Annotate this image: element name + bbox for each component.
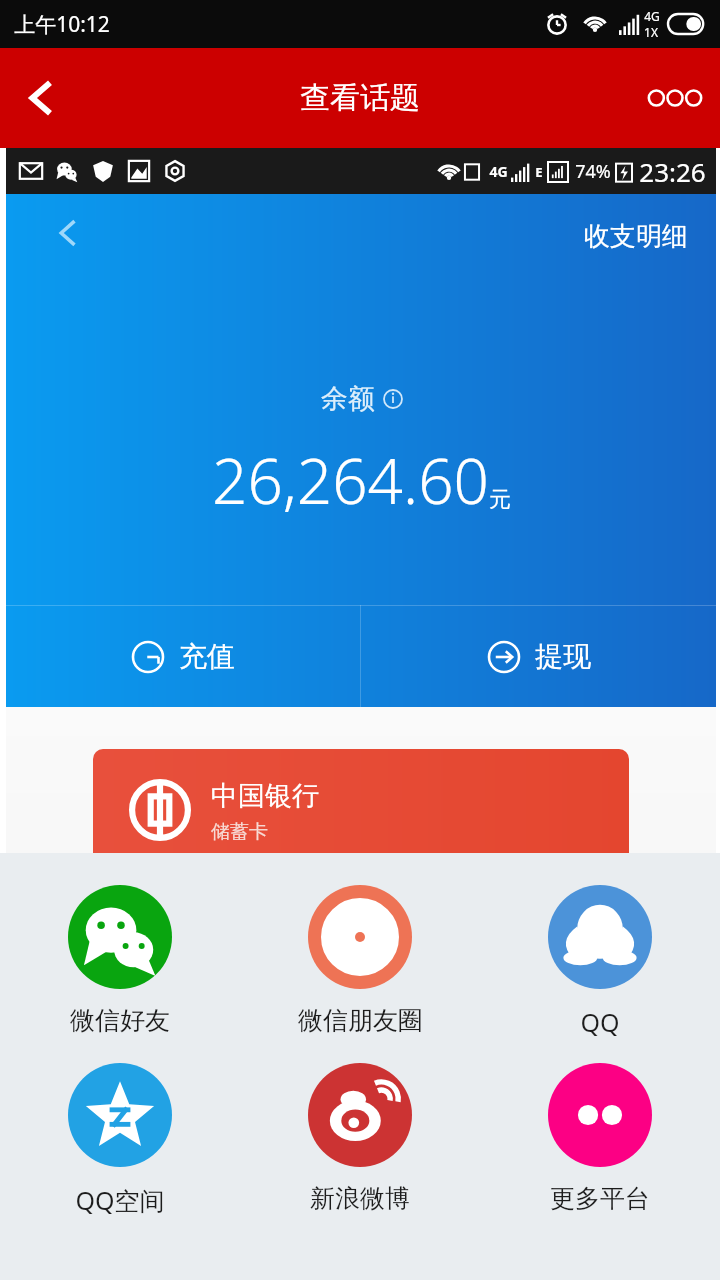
button[interactable]: Back — [0, 56, 84, 140]
staticText: 微信朋友圈 — [298, 1005, 423, 1036]
button[interactable]: 充值 — [6, 605, 360, 707]
staticText: 元 — [489, 486, 511, 514]
button[interactable]: 微信好友 — [0, 885, 240, 1036]
button[interactable]: 中国银行 — [93, 749, 629, 909]
staticText: 4G — [644, 8, 660, 24]
staticText: E — [535, 163, 543, 181]
staticText: 上午10:12 — [14, 10, 110, 39]
button[interactable]: QQ — [480, 885, 720, 1039]
button[interactable]: Back — [50, 216, 84, 250]
button[interactable]: 更多平台 — [480, 1063, 720, 1214]
staticText: 4G — [489, 162, 508, 181]
staticText: 1X — [644, 24, 658, 40]
staticText: QQ — [580, 1005, 620, 1039]
button[interactable]: 新浪微博 — [240, 1063, 480, 1214]
staticText: 查看话题 — [300, 79, 420, 117]
staticText: 微信好友 — [70, 1005, 170, 1036]
staticText: 更多平台 — [550, 1183, 650, 1214]
staticText: 74% — [575, 159, 611, 184]
button[interactable]: QQ空间 — [0, 1063, 240, 1217]
staticText: 储蓄卡 — [211, 820, 268, 844]
button[interactable]: More options — [630, 53, 720, 143]
button[interactable]: 收支明细 — [584, 220, 688, 253]
staticText: 新浪微博 — [310, 1183, 410, 1214]
button[interactable]: 微信朋友圈 — [240, 885, 480, 1036]
button[interactable]: 提现 — [361, 605, 716, 707]
staticText: 提现 — [535, 639, 591, 674]
staticText: 余额 — [321, 382, 375, 416]
staticText: 23:26 — [639, 154, 706, 189]
staticText: 中国银行 — [211, 779, 319, 813]
staticText: 26,264.60 — [212, 438, 489, 522]
staticText: 充值 — [179, 639, 235, 674]
staticText: QQ空间 — [75, 1183, 165, 1217]
